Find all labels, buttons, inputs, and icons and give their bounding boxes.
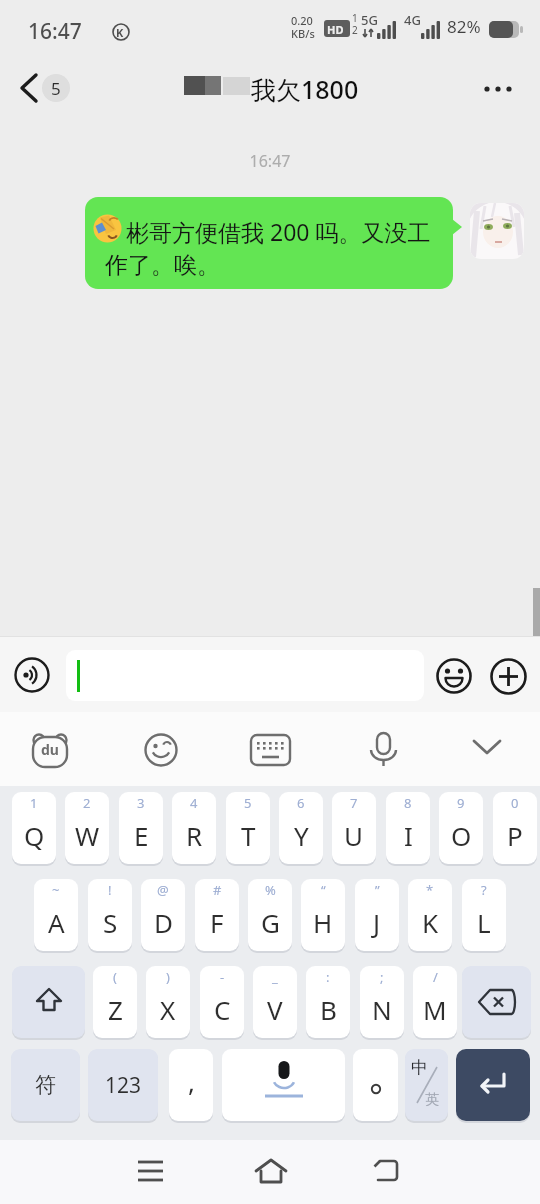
- staticText: J: [373, 905, 381, 940]
- button[interactable]: ;: [360, 966, 404, 1038]
- button[interactable]: [255, 1158, 287, 1184]
- button[interactable]: @: [141, 879, 185, 951]
- staticText: X: [160, 992, 176, 1027]
- staticText: 7: [350, 794, 358, 812]
- staticText: 中: [411, 1057, 428, 1078]
- button[interactable]: [374, 1159, 400, 1183]
- button[interactable]: ,: [169, 1049, 213, 1121]
- button[interactable]: /: [413, 966, 457, 1038]
- staticText: O: [451, 818, 472, 853]
- staticText: 我欠1800: [251, 72, 359, 106]
- staticText: L: [477, 905, 491, 940]
- staticText: /: [433, 968, 438, 986]
- button[interactable]: 1: [12, 792, 56, 864]
- staticText: M: [423, 992, 447, 1027]
- button[interactable]: ”: [355, 879, 399, 951]
- button[interactable]: #: [195, 879, 239, 951]
- staticText: 作了。唉。: [105, 251, 220, 280]
- button[interactable]: “: [301, 879, 345, 951]
- button[interactable]: [462, 966, 531, 1038]
- staticText: 1: [30, 794, 38, 812]
- button[interactable]: 2: [65, 792, 109, 864]
- staticText: F: [210, 905, 224, 940]
- staticText: _: [272, 968, 278, 986]
- button[interactable]: 0: [493, 792, 537, 864]
- staticText: !: [108, 881, 112, 899]
- button[interactable]: [369, 732, 398, 769]
- button[interactable]: [222, 1049, 345, 1121]
- staticText: (: [113, 968, 117, 986]
- staticText: A: [48, 905, 65, 940]
- staticText: HD: [327, 22, 344, 37]
- button[interactable]: [66, 650, 424, 701]
- button[interactable]: [144, 733, 178, 767]
- staticText: 9: [457, 794, 465, 812]
- staticText: @: [157, 881, 169, 899]
- staticText: 1: [352, 11, 358, 25]
- button[interactable]: 4: [172, 792, 216, 864]
- button[interactable]: !: [88, 879, 132, 951]
- button[interactable]: [16, 72, 42, 104]
- button[interactable]: [470, 203, 524, 259]
- button[interactable]: [353, 1049, 398, 1121]
- button[interactable]: (: [93, 966, 137, 1038]
- staticText: 16:47: [28, 17, 82, 46]
- staticText: KB/s: [291, 26, 315, 41]
- staticText: 5: [51, 77, 61, 100]
- button[interactable]: ): [146, 966, 190, 1038]
- staticText: H: [313, 905, 333, 940]
- button[interactable]: -: [200, 966, 244, 1038]
- button[interactable]: [490, 658, 527, 695]
- button[interactable]: 7: [332, 792, 376, 864]
- button[interactable]: [482, 78, 518, 100]
- staticText: ,: [188, 1064, 195, 1099]
- staticText: 2: [352, 23, 358, 37]
- staticText: 2: [83, 794, 91, 812]
- staticText: B: [320, 992, 337, 1027]
- staticText: T: [241, 818, 256, 853]
- button[interactable]: 9: [439, 792, 483, 864]
- button[interactable]: [31, 733, 69, 769]
- staticText: S: [103, 905, 118, 940]
- button[interactable]: 8: [386, 792, 430, 864]
- button[interactable]: *: [408, 879, 452, 951]
- button[interactable]: [85, 197, 465, 289]
- button[interactable]: 5: [226, 792, 270, 864]
- staticText: 4G: [404, 11, 421, 29]
- staticText: :: [326, 968, 330, 986]
- button[interactable]: ?: [462, 879, 506, 951]
- button[interactable]: 6: [279, 792, 323, 864]
- button[interactable]: %: [248, 879, 292, 951]
- staticText: 5: [244, 794, 252, 812]
- button[interactable]: [436, 658, 472, 694]
- staticText: 英: [425, 1091, 439, 1109]
- staticText: 16:47: [0, 150, 540, 172]
- button[interactable]: 中: [405, 1049, 448, 1121]
- staticText: N: [372, 992, 392, 1027]
- button[interactable]: [138, 1160, 164, 1182]
- staticText: 6: [297, 794, 305, 812]
- button[interactable]: 符: [11, 1049, 80, 1121]
- button[interactable]: 5: [42, 74, 70, 102]
- staticText: E: [134, 818, 149, 853]
- staticText: R: [186, 818, 203, 853]
- staticText: D: [154, 905, 173, 940]
- button[interactable]: _: [253, 966, 297, 1038]
- button[interactable]: [12, 966, 85, 1038]
- button[interactable]: [472, 739, 504, 759]
- button[interactable]: 123: [88, 1049, 158, 1121]
- button[interactable]: ~: [34, 879, 78, 951]
- staticText: 0: [511, 794, 519, 812]
- staticText: C: [214, 992, 231, 1027]
- button[interactable]: 3: [119, 792, 163, 864]
- staticText: -: [220, 968, 225, 986]
- button[interactable]: [14, 657, 50, 693]
- staticText: du: [41, 740, 59, 759]
- staticText: 82%: [447, 15, 481, 38]
- button[interactable]: [456, 1049, 530, 1121]
- staticText: 8: [404, 794, 412, 812]
- button[interactable]: :: [306, 966, 350, 1038]
- button[interactable]: [251, 735, 291, 766]
- staticText: ~: [52, 881, 60, 899]
- staticText: G: [261, 905, 280, 940]
